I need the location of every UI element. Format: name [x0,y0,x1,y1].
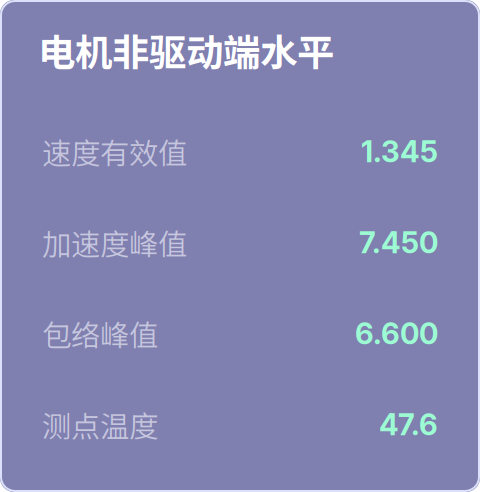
staticText: 电机非驱动端水平 [38,23,334,77]
staticText: 加速度峰值 [42,221,187,264]
button[interactable]: 包络峰值 [42,288,438,379]
button[interactable]: 速度有效值 [42,106,438,197]
staticText: 6.600 [355,316,438,351]
button[interactable]: 加速度峰值 [42,197,438,288]
staticText: 速度有效值 [42,130,187,173]
button[interactable]: 测点温度 [42,379,438,470]
staticText: 47.6 [379,407,438,442]
staticText: 7.450 [359,225,438,260]
staticText: 测点温度 [42,403,158,446]
staticText: 包络峰值 [42,312,158,355]
staticText: 1.345 [361,134,438,169]
